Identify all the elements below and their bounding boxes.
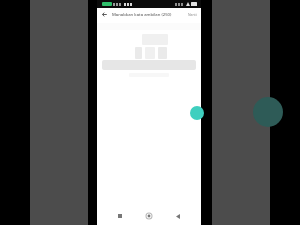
button[interactable]: Nanti — [187, 11, 198, 18]
button[interactable]: Add — [190, 106, 204, 120]
button[interactable]: Home — [143, 210, 155, 222]
button[interactable]: Back — [100, 10, 109, 19]
staticText: Manabkan kata ambilan (250) — [112, 12, 185, 18]
button[interactable]: Back — [172, 210, 184, 222]
staticText: Nanti — [188, 12, 197, 17]
button[interactable]: Recent apps — [114, 210, 126, 222]
